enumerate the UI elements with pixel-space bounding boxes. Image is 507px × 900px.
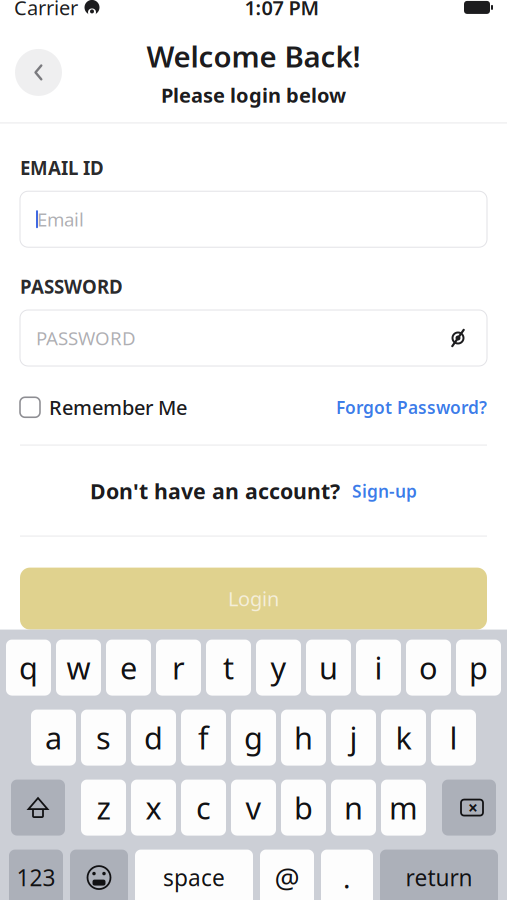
button[interactable]: h — [281, 710, 326, 766]
staticText: Welcome Back! — [146, 37, 360, 76]
staticText: @ — [274, 859, 299, 896]
staticText: Carrier — [14, 0, 78, 21]
button[interactable]: y — [256, 640, 301, 696]
staticText: y — [270, 647, 286, 688]
staticText: b — [294, 787, 313, 828]
staticText: k — [395, 717, 411, 758]
button[interactable]: g — [231, 710, 276, 766]
button[interactable]: m — [381, 780, 426, 836]
staticText: × — [468, 796, 478, 819]
staticText: n — [344, 787, 363, 828]
button[interactable]: 123 — [9, 850, 63, 900]
button[interactable]: k — [381, 710, 426, 766]
button[interactable]: Back — [15, 49, 62, 96]
button[interactable]: s — [81, 710, 126, 766]
staticText: Don't have an account? — [90, 477, 340, 505]
staticText: v — [245, 787, 261, 828]
staticText: r — [172, 647, 185, 688]
button[interactable]: p — [456, 640, 501, 696]
staticText: Remember Me — [49, 394, 187, 421]
staticText: Sign-up — [352, 480, 417, 503]
staticText: f — [198, 717, 209, 758]
staticText: z — [96, 787, 110, 828]
staticText: j — [349, 717, 357, 758]
staticText: space — [163, 862, 225, 893]
button[interactable]: Delete — [442, 780, 496, 836]
staticText: h — [294, 717, 313, 758]
staticText: o — [419, 647, 438, 688]
button[interactable]: t — [206, 640, 251, 696]
button[interactable]: d — [131, 710, 176, 766]
button[interactable]: Forgot Password? — [336, 390, 487, 425]
button[interactable]: a — [31, 710, 76, 766]
button[interactable]: u — [306, 640, 351, 696]
button[interactable]: Sign-up — [352, 476, 417, 507]
button[interactable]: f — [181, 710, 226, 766]
button[interactable]: Login — [20, 568, 487, 630]
button[interactable]: space — [135, 850, 253, 900]
button[interactable]: b — [281, 780, 326, 836]
staticText: g — [244, 717, 263, 758]
button[interactable]: i — [356, 640, 401, 696]
button[interactable]: @ — [260, 850, 314, 900]
button[interactable]: q — [6, 640, 51, 696]
staticText: l — [449, 717, 457, 758]
staticText: e — [120, 647, 137, 688]
staticText: return — [405, 862, 472, 893]
button[interactable]: return — [380, 850, 498, 900]
staticText: Forgot Password? — [336, 396, 487, 419]
staticText: a — [45, 717, 62, 758]
staticText: Login — [228, 585, 279, 612]
staticText: s — [96, 717, 111, 758]
button[interactable]: o — [406, 640, 451, 696]
staticText: d — [144, 717, 163, 758]
button[interactable]: n — [331, 780, 376, 836]
button[interactable]: Emoji — [70, 850, 128, 900]
staticText: 1:07 PM — [244, 0, 319, 21]
staticText: c — [196, 787, 211, 828]
staticText: . — [343, 859, 351, 896]
button[interactable]: w — [56, 640, 101, 696]
button[interactable]: z — [81, 780, 126, 836]
staticText: x — [145, 787, 161, 828]
button[interactable]: Remember Me — [20, 388, 187, 427]
button[interactable]: c — [181, 780, 226, 836]
button[interactable]: r — [156, 640, 201, 696]
button[interactable]: Show password — [441, 321, 475, 355]
button[interactable]: j — [331, 710, 376, 766]
staticText: 123 — [16, 862, 55, 893]
button[interactable]: l — [431, 710, 476, 766]
button[interactable]: e — [106, 640, 151, 696]
staticText: i — [374, 647, 382, 688]
staticText: u — [319, 647, 338, 688]
staticText: PASSWORD — [36, 326, 136, 350]
staticText: q — [19, 647, 38, 688]
staticText: Please login below — [161, 82, 346, 108]
staticText: m — [389, 787, 418, 828]
staticText: PASSWORD — [20, 274, 123, 299]
staticText: p — [469, 647, 488, 688]
staticText: EMAIL ID — [20, 155, 104, 180]
staticText: Email — [37, 207, 84, 232]
button[interactable]: Shift — [11, 780, 65, 836]
staticText: t — [223, 647, 234, 688]
button[interactable]: x — [131, 780, 176, 836]
staticText: w — [66, 647, 90, 688]
button[interactable]: . — [321, 850, 373, 900]
button[interactable]: v — [231, 780, 276, 836]
